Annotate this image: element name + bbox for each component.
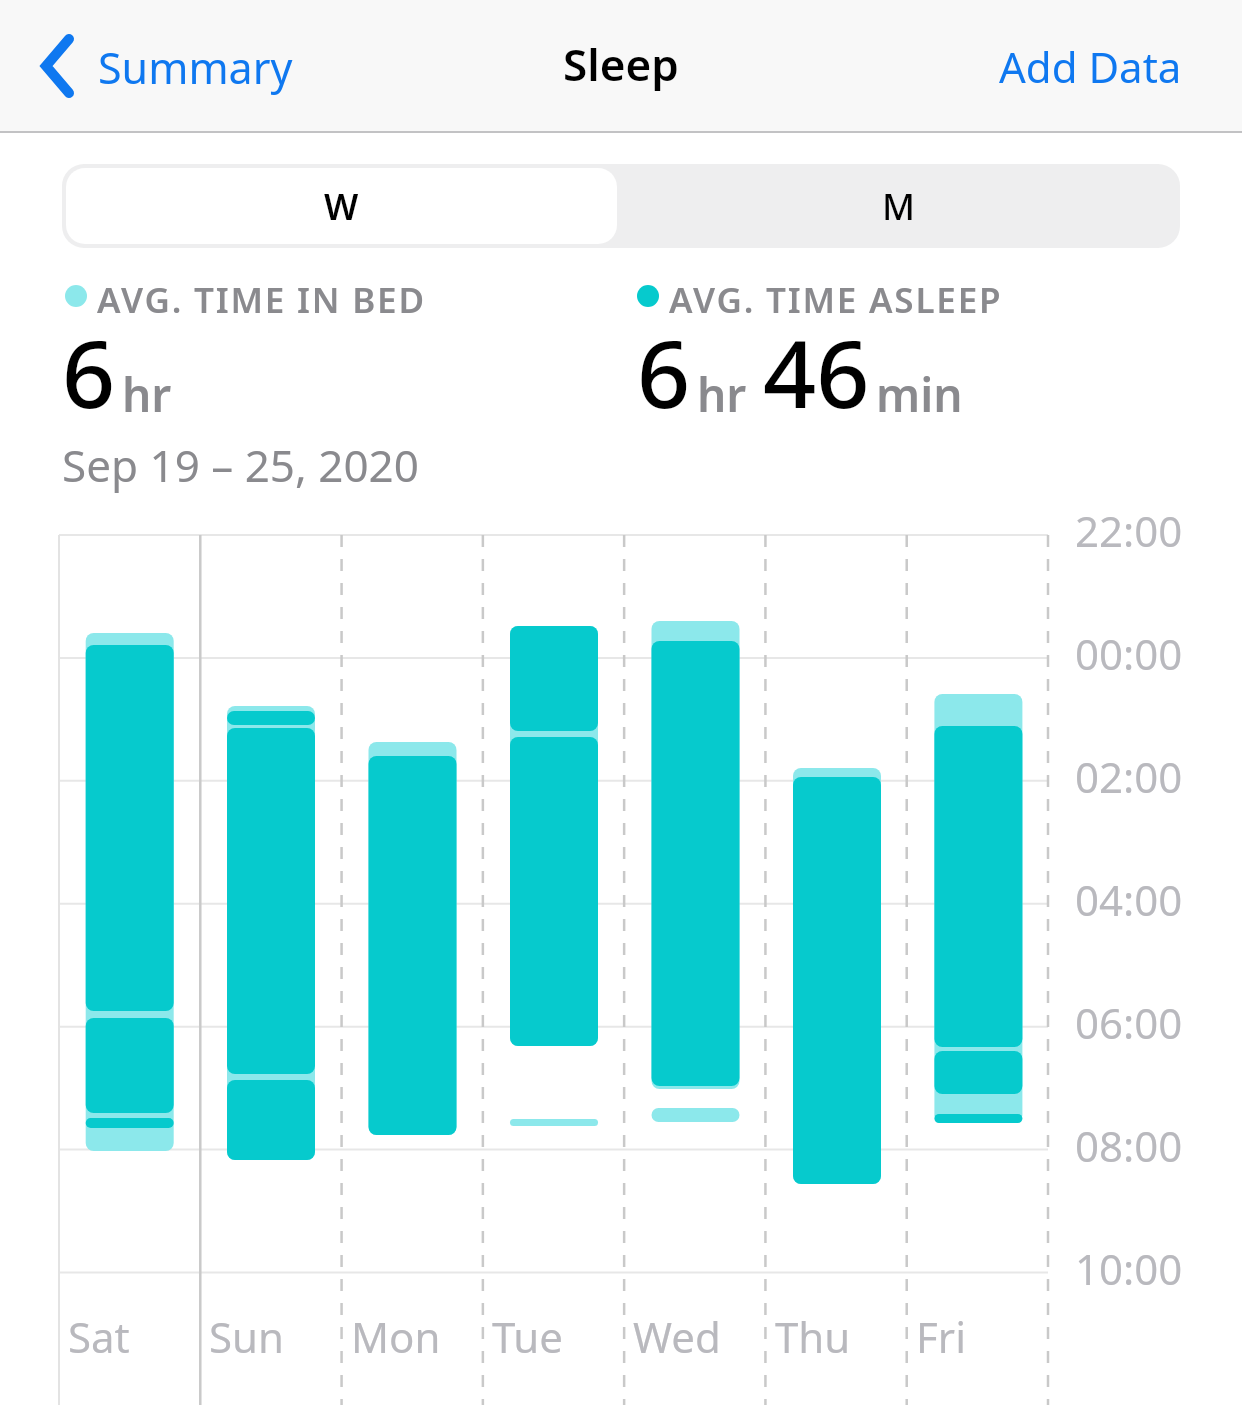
staticText: Tue (492, 1308, 563, 1365)
staticText: Fri (916, 1308, 966, 1365)
button[interactable]: Add Data (999, 38, 1182, 95)
staticText: hr (697, 363, 747, 426)
staticText: Sep 19 – 25, 2020 (62, 435, 419, 495)
staticText: 08:00 (1075, 1117, 1183, 1174)
staticText: 04:00 (1075, 871, 1183, 928)
staticText: 6 (637, 309, 691, 436)
staticText: Wed (633, 1308, 721, 1365)
staticText: Thu (775, 1308, 851, 1365)
staticText: M (882, 182, 916, 231)
staticText: 6 (62, 309, 116, 436)
staticText: W (324, 182, 359, 231)
staticText: hr (122, 363, 172, 426)
staticText: 00:00 (1075, 625, 1183, 682)
staticText: Add Data (999, 38, 1182, 95)
staticText: Mon (351, 1308, 441, 1365)
staticText: 46 (763, 309, 870, 436)
staticText: 22:00 (1075, 502, 1183, 559)
staticText: min (876, 363, 963, 426)
button[interactable]: Summary (30, 30, 320, 105)
staticText: Summary (98, 38, 293, 97)
button[interactable]: W (66, 168, 617, 244)
button[interactable]: M (621, 168, 1176, 244)
staticText: 10:00 (1075, 1240, 1183, 1297)
staticText: AVG. TIME ASLEEP (669, 276, 1003, 324)
staticText: AVG. TIME IN BED (97, 276, 426, 324)
staticText: 06:00 (1075, 994, 1183, 1051)
staticText: Sat (68, 1308, 130, 1365)
staticText: 02:00 (1075, 748, 1183, 805)
staticText: Sleep (563, 34, 679, 94)
staticText: Sun (209, 1308, 284, 1365)
